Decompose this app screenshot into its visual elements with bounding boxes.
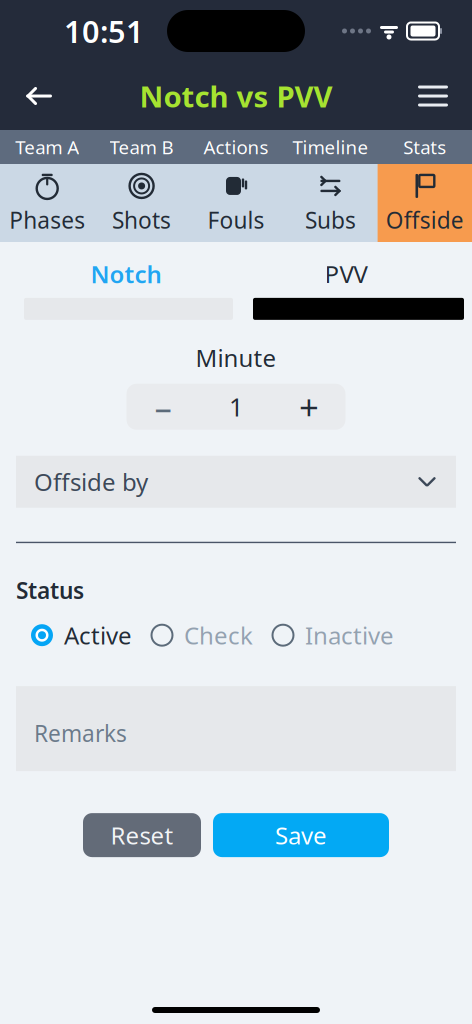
button[interactable]: Inactive bbox=[271, 619, 394, 651]
staticText: Save bbox=[275, 819, 327, 851]
button[interactable]: Increase minute bbox=[272, 384, 345, 430]
staticText: Subs bbox=[305, 205, 356, 235]
button[interactable]: Menu bbox=[406, 69, 460, 123]
button[interactable]: Fouls bbox=[189, 164, 283, 242]
staticText: Minute bbox=[195, 342, 276, 374]
staticText: Team B bbox=[110, 135, 174, 159]
button[interactable]: Team B bbox=[94, 130, 189, 164]
staticText: Notch vs PVV bbox=[139, 76, 332, 115]
button[interactable]: Back bbox=[12, 69, 66, 123]
staticText: Inactive bbox=[305, 619, 394, 651]
button[interactable]: Decrease minute bbox=[126, 384, 199, 430]
staticText: Stats bbox=[403, 135, 446, 159]
button[interactable]: Offside bbox=[378, 164, 472, 242]
button[interactable]: Offside by bbox=[16, 456, 456, 508]
button[interactable]: Subs bbox=[283, 164, 378, 242]
staticText: Offside by bbox=[34, 466, 148, 498]
staticText: Check bbox=[184, 619, 253, 651]
staticText: Actions bbox=[203, 135, 268, 159]
staticText: Timeline bbox=[292, 135, 368, 159]
staticText: Active bbox=[64, 619, 132, 651]
staticText: Shots bbox=[112, 205, 171, 235]
button[interactable]: Remarks bbox=[16, 686, 456, 771]
button[interactable]: Check bbox=[150, 619, 253, 651]
button[interactable]: Stats bbox=[378, 130, 472, 164]
staticText: + bbox=[299, 384, 319, 430]
staticText: Offside bbox=[386, 205, 464, 235]
staticText: PVV bbox=[324, 258, 367, 290]
staticText: Team A bbox=[15, 135, 79, 159]
button[interactable]: Active bbox=[30, 619, 132, 651]
button[interactable]: Save bbox=[213, 813, 389, 857]
button[interactable]: Reset bbox=[83, 813, 201, 857]
staticText: 1 bbox=[229, 390, 243, 423]
staticText: Reset bbox=[110, 819, 173, 851]
staticText: – bbox=[154, 384, 171, 430]
button[interactable]: Phases bbox=[0, 164, 94, 242]
button[interactable]: PVV team bar bbox=[253, 298, 464, 320]
staticText: Status bbox=[16, 575, 84, 605]
staticText: Notch bbox=[90, 258, 161, 290]
staticText: Remarks bbox=[34, 718, 127, 748]
button[interactable]: Actions bbox=[189, 130, 283, 164]
staticText: 10:51 bbox=[64, 11, 144, 51]
staticText: Fouls bbox=[207, 205, 264, 235]
button[interactable]: Shots bbox=[94, 164, 189, 242]
button[interactable]: Team A bbox=[0, 130, 94, 164]
button[interactable]: Timeline bbox=[283, 130, 378, 164]
staticText: Phases bbox=[9, 205, 85, 235]
